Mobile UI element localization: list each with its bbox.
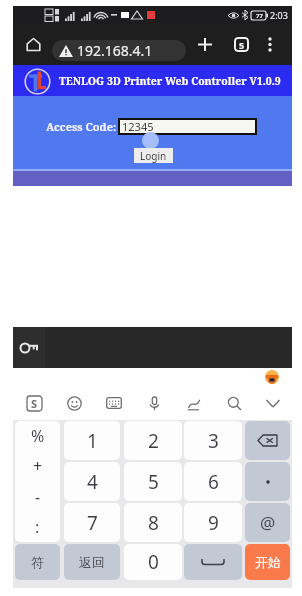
button[interactable]: 6 <box>184 462 242 501</box>
button[interactable]: 1 <box>64 421 120 460</box>
button[interactable]: 192.168.4.1 <box>52 40 186 61</box>
button[interactable] <box>184 544 242 580</box>
button[interactable]: : <box>15 512 60 542</box>
button[interactable]: 5 <box>124 462 182 501</box>
button[interactable]: 7 <box>64 503 120 542</box>
button[interactable]: New tab <box>193 24 217 65</box>
button[interactable]: 2 <box>124 421 182 460</box>
button[interactable]: Voice input <box>140 389 168 417</box>
staticText: 192.168.4.1 <box>77 41 153 60</box>
button[interactable]: 12345 <box>118 118 257 135</box>
staticText: 4 <box>87 469 98 495</box>
staticText: 12345 <box>122 119 154 134</box>
button[interactable]: 8 <box>124 503 182 542</box>
button[interactable] <box>245 421 290 460</box>
staticText: 返回 <box>79 554 105 570</box>
staticText: Login <box>140 149 167 163</box>
button[interactable]: 9 <box>184 503 242 542</box>
staticText: % <box>31 425 45 447</box>
button[interactable]: More options <box>258 24 282 65</box>
button[interactable]: Home <box>23 24 43 65</box>
staticText: 5 <box>148 469 159 495</box>
button[interactable]: 4 <box>64 462 120 501</box>
staticText: 0 <box>148 549 159 575</box>
staticText: + <box>33 455 43 477</box>
button[interactable]: Emoji <box>60 389 88 417</box>
staticText: 2 <box>148 428 159 454</box>
button[interactable]: Handwriting <box>180 389 208 417</box>
button[interactable]: % <box>15 421 60 451</box>
button[interactable]: Hide keyboard <box>259 389 287 417</box>
staticText: TENLOG 3D Printer Web Controller V1.0.9 <box>59 74 281 88</box>
staticText: Access Code: <box>46 119 117 134</box>
staticText: S <box>31 396 38 411</box>
button[interactable]: Login <box>134 148 173 163</box>
button[interactable]: + <box>15 451 60 481</box>
button[interactable]: Search <box>220 389 248 417</box>
staticText: @ <box>260 511 276 534</box>
button[interactable] <box>245 462 290 501</box>
staticText: 8 <box>148 510 159 536</box>
staticText: 3 <box>208 428 219 454</box>
staticText: 1 <box>87 428 98 454</box>
button[interactable]: Sogou <box>20 389 48 417</box>
staticText: 77 <box>256 12 263 20</box>
button[interactable]: 3 <box>184 421 242 460</box>
staticText: 9 <box>208 510 219 536</box>
button[interactable]: 开始 <box>245 544 290 580</box>
button[interactable]: Keyboard <box>100 389 128 417</box>
button[interactable]: 0 <box>124 544 182 580</box>
button[interactable]: - <box>15 482 60 512</box>
button[interactable]: 符 <box>15 544 60 580</box>
staticText: 开始 <box>255 554 281 570</box>
staticText: 5 <box>239 39 245 51</box>
staticText: 7 <box>87 510 98 536</box>
button[interactable]: Tabs <box>229 24 253 65</box>
staticText: 2:03 <box>270 9 288 21</box>
staticText: 6 <box>208 469 219 495</box>
staticText: - <box>35 486 41 508</box>
staticText: 符 <box>31 554 44 570</box>
staticText: : <box>35 516 40 538</box>
button[interactable]: 返回 <box>64 544 120 580</box>
button[interactable]: Password <box>13 327 45 368</box>
button[interactable]: @ <box>245 503 290 542</box>
